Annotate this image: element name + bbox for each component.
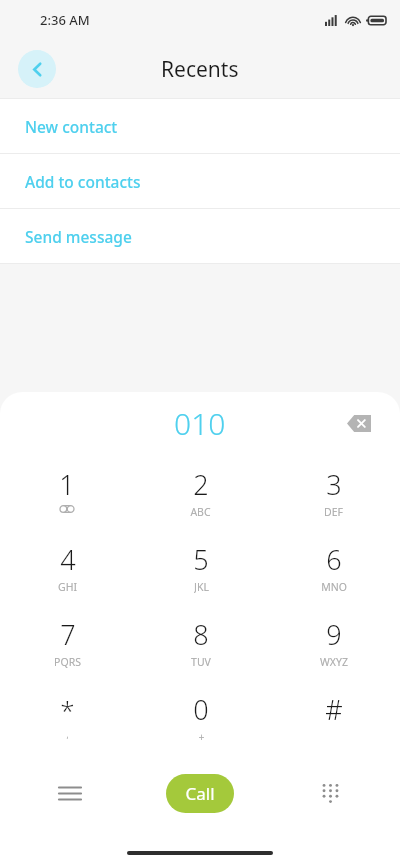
staticText: GHI [58,580,77,593]
staticText: New contact [25,116,118,137]
button[interactable]: 3 [267,454,400,529]
staticText: 4 [60,541,76,578]
button[interactable]: Dialpad [308,771,352,815]
button[interactable]: Send message [0,209,400,263]
button[interactable]: New contact [0,99,400,153]
staticText: * [60,692,75,727]
button[interactable]: 4 [0,529,134,604]
staticText: , [66,729,69,740]
button[interactable]: Backspace [340,404,378,442]
button[interactable]: 6 [267,529,400,604]
button[interactable]: # [267,679,400,754]
staticText: Send message [25,226,132,247]
staticText: JKL [194,580,209,593]
button[interactable]: Call [166,774,234,813]
staticText: PQRS [54,655,81,668]
staticText: Add to contacts [25,171,141,192]
staticText: 9 [326,616,342,653]
staticText: TUV [191,655,211,668]
button[interactable]: Menu [48,771,92,815]
staticText: Call [185,782,215,805]
staticText: 7 [60,616,76,653]
staticText: Recents [161,55,239,84]
staticText: WXYZ [320,655,348,668]
staticText: ABC [190,505,211,518]
staticText: 8 [193,616,209,653]
button[interactable]: Add to contacts [0,154,400,208]
staticText: + [198,730,205,743]
staticText: MNO [321,580,347,593]
button[interactable]: 5 [134,529,267,604]
staticText: 010 [174,403,226,444]
button[interactable]: 9 [267,604,400,679]
button[interactable]: 7 [0,604,134,679]
staticText: 1 [59,466,75,503]
staticText: 5 [193,541,209,578]
staticText: 2:36 AM [40,11,90,29]
staticText: # [325,691,343,728]
button[interactable]: Back [18,50,56,88]
button[interactable]: 0 [134,679,267,754]
button[interactable]: 1 [0,454,134,529]
staticText: 2 [193,466,209,503]
staticText: 3 [326,466,342,503]
button[interactable]: 2 [134,454,267,529]
staticText: 6 [326,541,342,578]
button[interactable]: 8 [134,604,267,679]
staticText: 0 [193,691,209,728]
staticText: DEF [324,505,343,518]
button[interactable]: * [0,679,134,754]
